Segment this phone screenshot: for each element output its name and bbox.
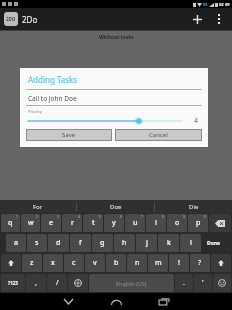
button[interactable]: Add task [186,8,208,30]
staticText: 8 [162,214,165,219]
button[interactable]: Hide keyboard [44,293,92,310]
button[interactable]: y [104,214,124,232]
button[interactable]: Doe [77,200,154,213]
button[interactable]: b [106,254,126,272]
button[interactable]: h [114,234,135,252]
button[interactable]: f [70,234,91,252]
button[interactable]: a [6,234,26,252]
staticText: 7 [141,214,144,219]
staticText: n [135,258,140,268]
button[interactable]: v [85,254,105,272]
staticText: a [14,238,19,248]
staticText: Done [207,240,221,247]
staticText: y [112,218,116,228]
button[interactable]: Space [89,274,174,292]
button[interactable]: o [167,214,187,232]
button[interactable]: Priority slider [26,116,184,126]
staticText: . [183,278,185,288]
staticText: s [35,238,39,248]
button[interactable]: q [1,214,20,232]
staticText: ' [202,278,204,288]
button[interactable]: ' [194,274,212,292]
button[interactable]: w [21,214,40,232]
staticText: k [167,238,171,248]
button[interactable]: Home [92,293,140,310]
button[interactable]: s [27,234,47,252]
button[interactable]: Cancel [116,130,201,140]
staticText: o [175,218,180,228]
button[interactable]: Recent apps [140,293,188,310]
staticText: x [51,258,55,268]
button[interactable]: Done [202,234,226,252]
staticText: Priority [28,109,42,114]
staticText: j [146,238,148,248]
button[interactable]: Change language [68,274,88,292]
button[interactable]: Save [27,130,111,140]
button[interactable]: t [83,214,103,232]
staticText: Adding Tasks [28,74,78,85]
button[interactable]: ! [169,254,189,272]
staticText: 02 [219,2,224,7]
staticText: u [133,218,138,228]
staticText: 0 [204,214,207,219]
staticText: h [122,238,127,248]
staticText: Doe [110,203,122,211]
button[interactable]: l [180,234,201,252]
staticText: , [35,278,37,288]
staticText: ? [198,258,202,268]
staticText: 2Do [22,14,38,25]
staticText: 3 [57,214,60,219]
staticText: i [155,218,157,228]
button[interactable]: Emoji [213,274,231,292]
button[interactable]: Shift [211,254,231,272]
button[interactable]: e [41,214,61,232]
staticText: 95 [203,2,208,7]
staticText: Die [189,203,199,211]
staticText: c [72,258,76,268]
staticText: m [155,258,162,268]
staticText: English (US) [116,280,147,287]
button[interactable]: k [158,234,179,252]
staticText: q [8,218,13,228]
staticText: f [79,238,82,248]
button[interactable]: r [62,214,82,232]
staticText: Cancel [149,131,168,139]
button[interactable]: For [0,200,76,213]
staticText: Without tasks [99,34,134,41]
button[interactable]: d [48,234,69,252]
staticText: w [28,218,34,228]
button[interactable]: g [92,234,113,252]
button[interactable]: z [22,254,42,272]
button[interactable]: / [47,274,67,292]
button[interactable]: Shift [1,254,21,272]
staticText: 1 [16,214,19,219]
button[interactable]: p [188,214,208,232]
button[interactable]: Call to John Doe [28,94,77,103]
button[interactable]: ? [190,254,210,272]
staticText: 2DO [6,16,16,22]
staticText: e [49,218,54,228]
button[interactable]: x [43,254,63,272]
staticText: v [93,258,97,268]
staticText: l [190,238,192,248]
staticText: b [114,258,119,268]
staticText: g [100,238,105,248]
button[interactable]: App icon [4,12,18,26]
staticText: 5 [99,214,102,219]
staticText: t [92,218,95,228]
staticText: z [30,258,34,268]
button[interactable]: c [64,254,84,272]
staticText: Save [62,131,76,139]
button[interactable]: j [136,234,157,252]
button[interactable]: , [26,274,46,292]
button[interactable]: m [148,254,168,272]
button[interactable]: n [127,254,147,272]
button[interactable]: ?123 [1,274,25,292]
button[interactable]: i [146,214,166,232]
button[interactable]: Die [155,200,232,213]
button[interactable]: Backspace [209,214,231,232]
staticText: p [196,218,201,228]
button[interactable]: More options [208,8,230,30]
button[interactable]: . [175,274,193,292]
button[interactable]: u [125,214,145,232]
